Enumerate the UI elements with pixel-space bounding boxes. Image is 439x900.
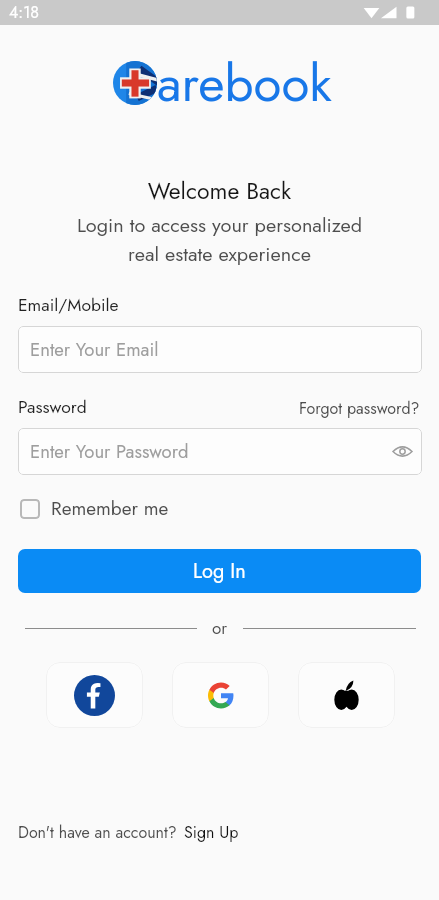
- staticText: Welcome Back: [0, 174, 439, 207]
- staticText: Password: [18, 394, 87, 419]
- button[interactable]: Sign in with Facebook: [46, 662, 143, 728]
- staticText: Email/Mobile: [18, 292, 119, 317]
- button[interactable]: Log In: [18, 549, 421, 593]
- staticText: Don't have an account?: [18, 821, 177, 844]
- button[interactable]: Enter Your Password: [18, 428, 422, 475]
- button[interactable]: Sign in with Apple: [298, 662, 395, 728]
- button[interactable]: Enter Your Email: [18, 326, 422, 373]
- button[interactable]: Forgot password?: [299, 397, 420, 420]
- staticText: Remember me: [51, 495, 169, 522]
- staticText: Login to access your personalized real e…: [0, 211, 439, 269]
- staticText: Log In: [193, 557, 246, 586]
- staticText: Enter Your Password: [30, 438, 189, 465]
- button[interactable]: Sign Up: [184, 821, 239, 844]
- staticText: or: [212, 616, 228, 641]
- button[interactable]: Sign in with Google: [172, 662, 269, 728]
- staticText: Enter Your Email: [30, 336, 159, 363]
- button[interactable]: Remember me: [18, 493, 171, 524]
- staticText: 4:18: [9, 1, 40, 24]
- staticText: arebook: [157, 46, 332, 120]
- other: Show password: [393, 444, 412, 459]
